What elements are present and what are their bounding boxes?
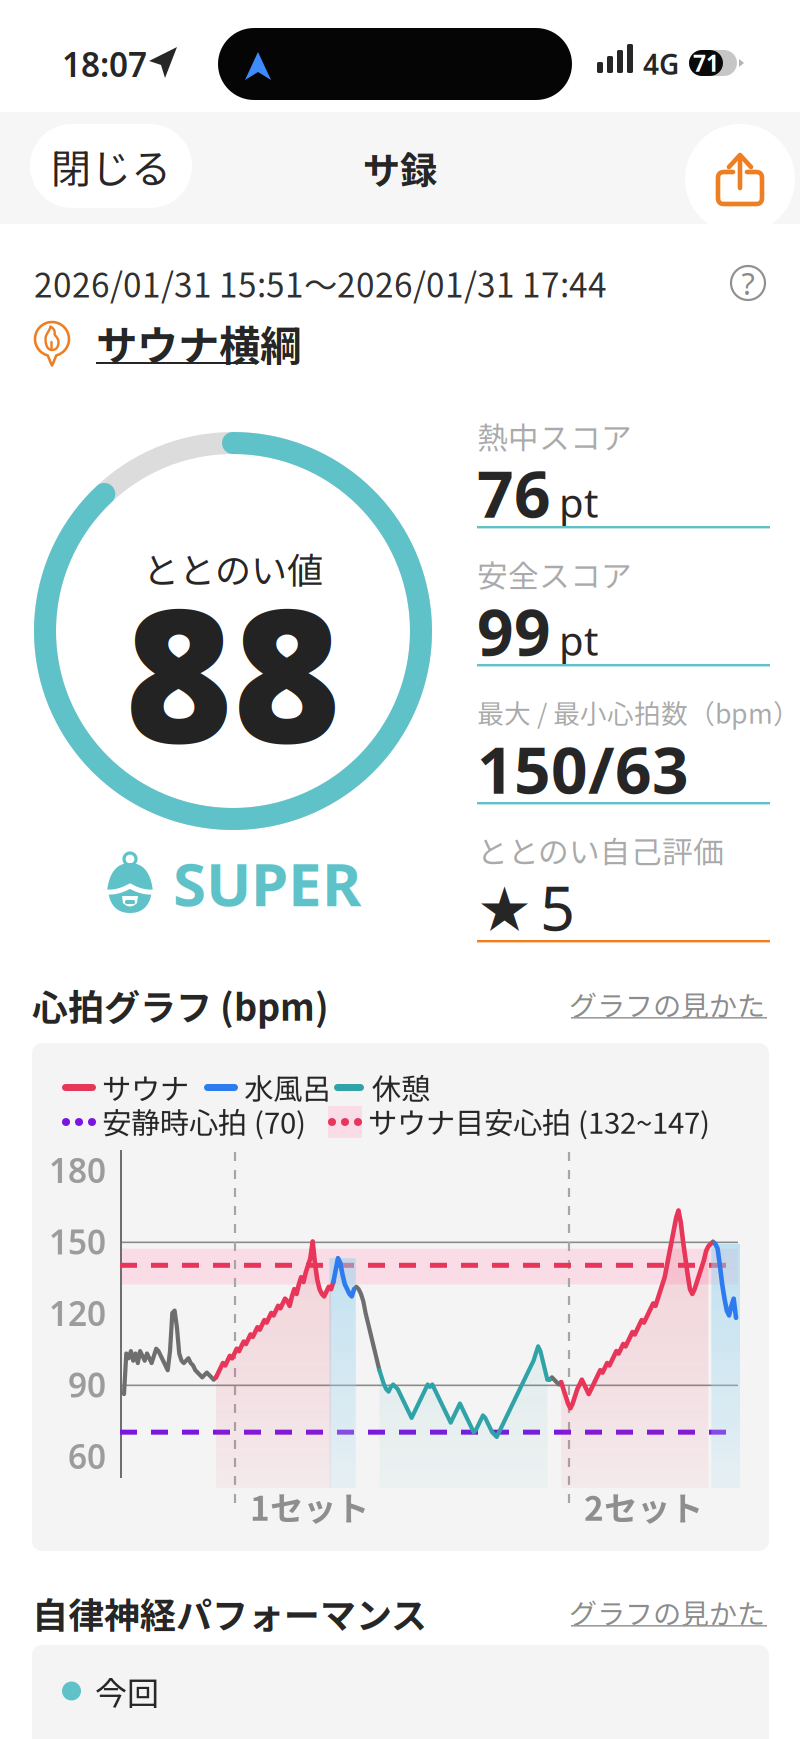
staticText: 76 [477,450,551,535]
button[interactable]: 共有 [685,124,795,234]
staticText: 安全スコア [477,552,632,596]
staticText: 4G [643,45,679,83]
button[interactable]: ヘルプ [725,260,771,306]
staticText: pt [559,476,598,529]
staticText: サウナ [102,1066,189,1108]
staticText: サ録 [363,141,437,195]
staticText: 最大 / 最小心拍数（bpm） [477,693,800,731]
staticText: SUPER [173,843,361,923]
staticText: pt [559,614,598,667]
staticText: 180 [49,1148,106,1192]
staticText: グラフの見かた [569,984,765,1024]
staticText: 60 [68,1434,106,1478]
staticText: 71 [693,48,719,78]
staticText: 2026/01/31 15:51〜2026/01/31 17:44 [34,259,607,307]
staticText: 150/63 [477,726,689,811]
staticText: ? [741,263,754,303]
staticText: 5 [540,866,575,948]
staticText: 120 [49,1291,106,1335]
staticText: 水風呂 [244,1066,331,1108]
staticText: グラフの見かた [569,1592,765,1632]
staticText: 90 [68,1362,106,1407]
staticText: 休憩 [372,1066,430,1108]
staticText: 安静時心拍 (70) [102,1100,306,1142]
button[interactable]: グラフの見かた [569,1591,769,1635]
staticText: 150 [49,1219,106,1264]
button[interactable]: グラフの見かた [569,983,769,1027]
staticText: サウナ目安心拍 (132~147) [368,1100,710,1142]
staticText: 1セット [250,1482,369,1530]
button[interactable]: 閉じる [30,124,192,208]
staticText: ととのい自己評価 [477,828,724,872]
staticText: 2セット [584,1482,703,1530]
staticText: 閉じる [51,137,171,195]
staticText: 自律神経パフォーマンス [32,1587,427,1639]
button[interactable]: サウナ横綱 [32,320,452,372]
staticText: 88 [125,549,341,793]
staticText: ととのい値 [143,542,323,594]
staticText: 心拍グラフ (bpm) [32,979,329,1031]
staticText: サウナ横綱 [96,313,301,373]
staticText: 18:07 [62,42,147,86]
staticText: ★ [477,875,532,944]
staticText: 今回 [95,1668,159,1714]
staticText: 99 [477,588,551,673]
staticText: 熱中スコア [477,414,632,458]
